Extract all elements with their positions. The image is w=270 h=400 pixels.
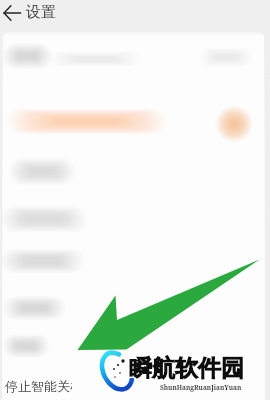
staticText: 瞬航软件园 bbox=[130, 353, 245, 382]
staticText: 瞬航软件园 bbox=[128, 353, 243, 382]
staticText: 瞬航软件园 bbox=[129, 353, 244, 382]
staticText: ShunHangRuanJianYuan bbox=[160, 383, 242, 392]
staticText: 停止智能关机 bbox=[5, 378, 72, 394]
staticText: 瞬航软件园 bbox=[128, 354, 243, 383]
staticText: 瞬航软件园 bbox=[128, 355, 243, 384]
staticText: 设置 bbox=[26, 3, 56, 22]
button[interactable]: 停止智能关机 bbox=[5, 378, 72, 396]
staticText: 瞬航软件园 bbox=[130, 355, 245, 384]
staticText: 瞬航软件园 bbox=[129, 355, 244, 384]
button[interactable]: Back bbox=[0, 1, 24, 25]
staticText: 瞬航软件园 bbox=[129, 354, 244, 383]
staticText: 瞬航软件园 bbox=[130, 354, 245, 383]
